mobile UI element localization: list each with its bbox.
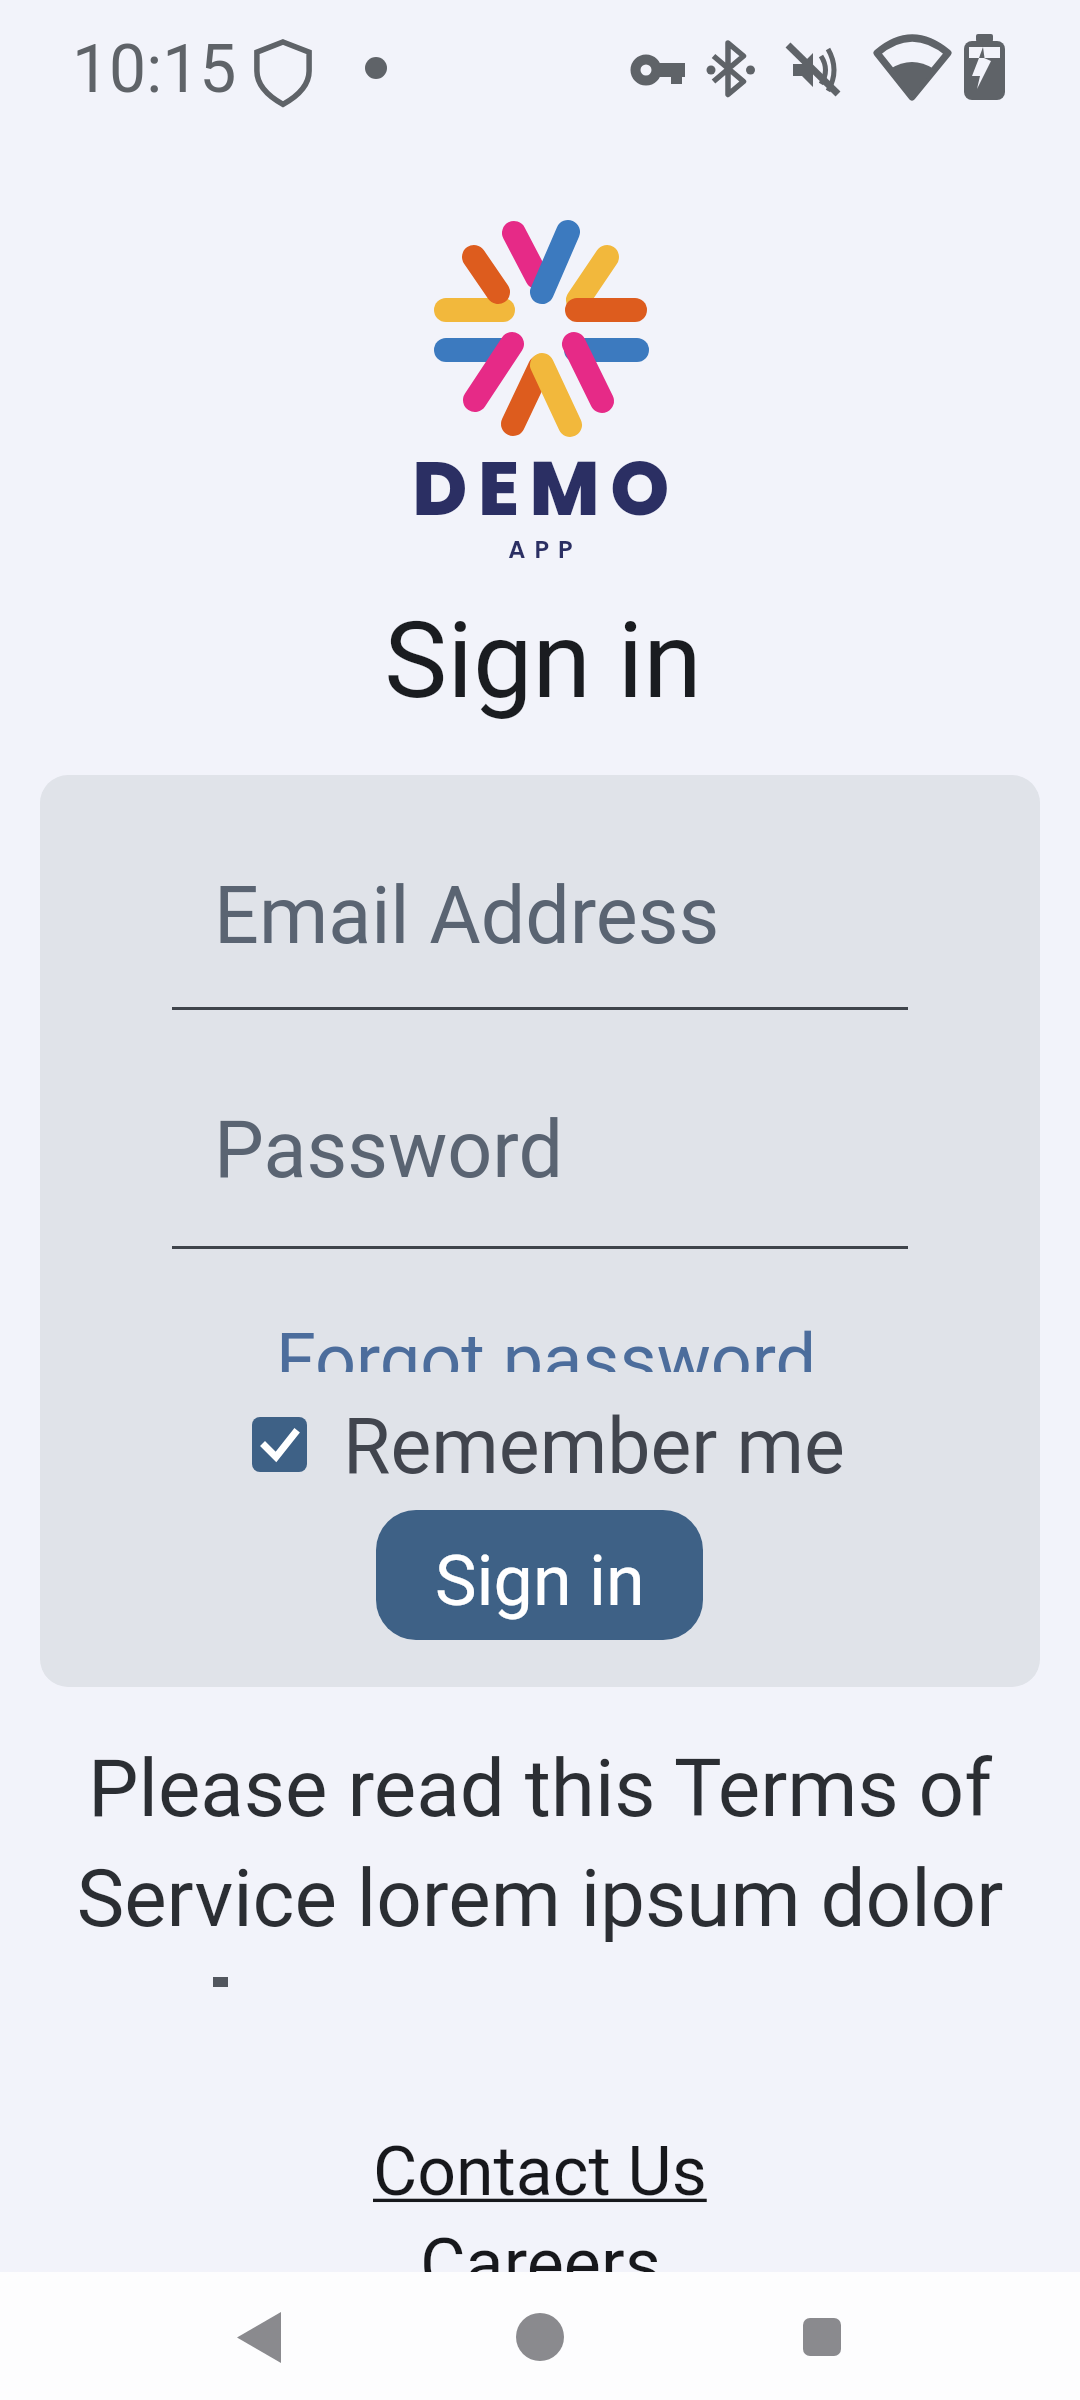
staticText: Sign in [3, 599, 1080, 723]
button[interactable] [772, 2286, 872, 2386]
button[interactable]: Password [172, 1104, 908, 1249]
button[interactable] [490, 2286, 590, 2386]
button[interactable] [209, 2286, 309, 2386]
staticText: Please read this Terms of [0, 1742, 1080, 1836]
staticText: Service lorem ipsum dolor [0, 1852, 1080, 1946]
staticText: Contact Us [373, 2132, 707, 2212]
button[interactable]: Careers [420, 2223, 661, 2305]
button[interactable]: Email Address [172, 870, 908, 1010]
staticText: Email Address [214, 870, 720, 963]
staticText: Careers [420, 2223, 661, 2305]
button[interactable]: Forgot password [276, 1318, 817, 1372]
staticText: 10:15 [72, 31, 237, 108]
button[interactable]: Remember me [232, 1398, 734, 1488]
button[interactable]: Sign in [376, 1510, 703, 1640]
staticText: APP [5, 533, 1080, 567]
staticText: DEMO [6, 436, 1080, 541]
button[interactable]: Contact Us [373, 2132, 707, 2212]
staticText: Forgot password [276, 1318, 817, 1372]
staticText: Remember me [343, 1402, 845, 1492]
staticText: Sign in [435, 1540, 645, 1622]
staticText: Password [214, 1104, 563, 1197]
